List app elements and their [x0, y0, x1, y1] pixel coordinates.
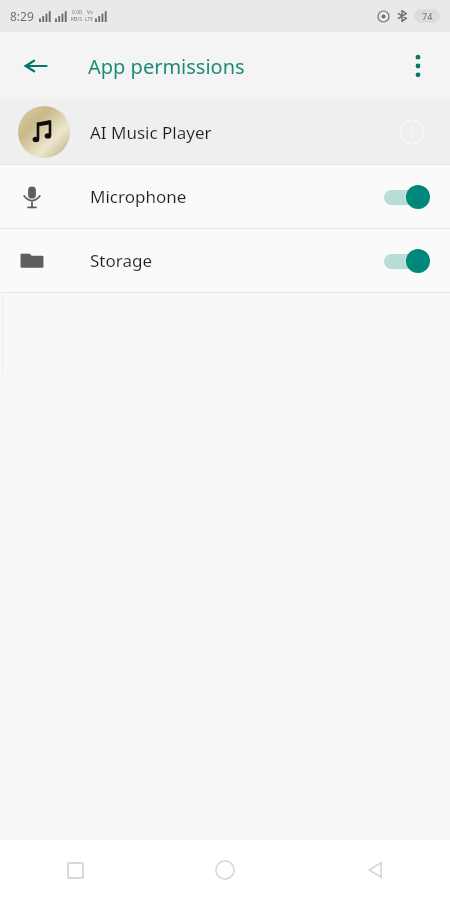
button[interactable]: Recent apps — [0, 840, 150, 900]
staticText: App permissions — [88, 53, 245, 80]
staticText: LTE — [85, 16, 94, 23]
button[interactable]: Home — [150, 840, 300, 900]
staticText: Microphone — [90, 185, 382, 208]
staticText: 0.00 — [72, 9, 82, 16]
staticText: 74 — [422, 10, 433, 22]
button[interactable]: Microphone — [0, 165, 450, 228]
staticText: Storage — [90, 249, 382, 272]
staticText: KB/S — [71, 16, 82, 23]
button[interactable]: Toggle permission — [382, 246, 432, 276]
button[interactable]: Back — [300, 840, 450, 900]
staticText: AI Music Player — [90, 121, 392, 144]
button[interactable]: More options — [394, 42, 442, 90]
button[interactable]: Toggle permission — [382, 182, 432, 212]
button[interactable]: Storage — [0, 229, 450, 292]
button[interactable]: Back — [12, 42, 60, 90]
staticText: Vo — [87, 9, 93, 16]
staticText: 8:29 — [10, 8, 34, 24]
button[interactable]: AI Music Player — [0, 100, 450, 164]
